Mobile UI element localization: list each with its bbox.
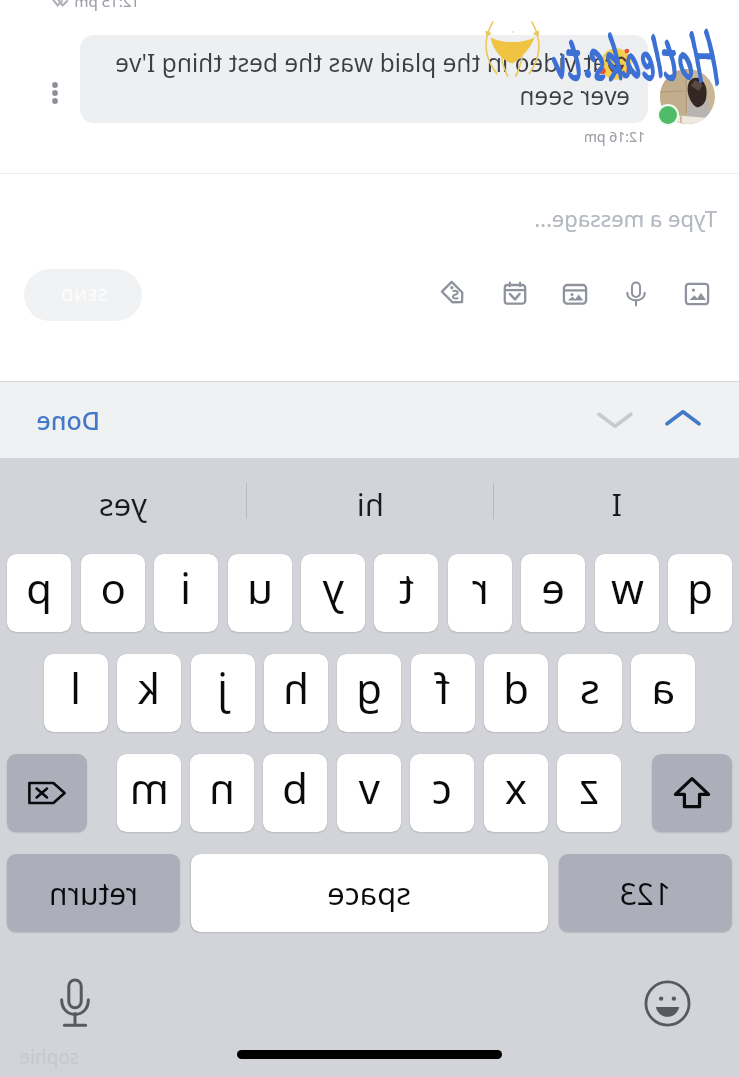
staticText: w: [610, 559, 644, 616]
staticText: 12:16 pm: [583, 127, 645, 146]
staticText: s: [579, 659, 600, 716]
staticText: m: [129, 759, 169, 816]
button[interactable]: c: [410, 754, 474, 832]
staticText: p: [26, 559, 52, 616]
button[interactable]: Schedule: [493, 272, 537, 316]
staticText: hi: [356, 483, 384, 525]
staticText: y: [322, 559, 344, 616]
button[interactable]: a: [631, 654, 695, 732]
staticText: g: [356, 659, 382, 716]
button[interactable]: 123: [559, 854, 732, 932]
button[interactable]: I: [494, 458, 739, 543]
staticText: b: [282, 759, 308, 816]
button[interactable]: m: [117, 754, 181, 832]
button[interactable]: Gallery: [553, 272, 597, 316]
button[interactable]: n: [190, 754, 254, 832]
button[interactable]: p: [7, 554, 71, 632]
button[interactable]: u: [228, 554, 292, 632]
button[interactable]: q: [668, 554, 732, 632]
button[interactable]: hi: [247, 458, 493, 543]
button[interactable]: e: [521, 554, 585, 632]
button[interactable]: v: [337, 754, 401, 832]
button[interactable]: x: [484, 754, 548, 832]
button[interactable]: g: [337, 654, 401, 732]
button[interactable]: Photo: [675, 272, 719, 316]
staticText: space: [327, 872, 411, 914]
button[interactable]: b: [263, 754, 327, 832]
button[interactable]: d: [484, 654, 548, 732]
button[interactable]: Shift: [652, 754, 732, 832]
staticText: l: [70, 659, 81, 716]
button[interactable]: Dictation: [45, 972, 105, 1032]
staticText: sophie: [19, 1044, 79, 1070]
button[interactable]: s: [558, 654, 622, 732]
staticText: Type a message...: [534, 203, 717, 233]
staticText: q: [687, 559, 713, 616]
staticText: h: [283, 659, 309, 716]
staticText: t: [398, 559, 414, 616]
staticText: c: [431, 759, 452, 816]
button[interactable]: Backspace: [7, 754, 87, 832]
button[interactable]: return: [7, 854, 180, 932]
button[interactable]: Done: [36, 393, 100, 447]
button[interactable]: f: [411, 654, 475, 732]
staticText: n: [209, 759, 235, 816]
button[interactable]: t: [374, 554, 438, 632]
button[interactable]: Previous field: [659, 395, 707, 443]
button[interactable]: h: [264, 654, 328, 732]
staticText: that video in the plaid was the best thi…: [115, 46, 630, 112]
button[interactable]: i: [154, 554, 218, 632]
staticText: x: [504, 759, 527, 816]
staticText: k: [137, 659, 160, 716]
staticText: a: [651, 659, 675, 716]
staticText: f: [435, 659, 450, 716]
button[interactable]: l: [44, 654, 108, 732]
staticText: SEND: [59, 284, 107, 306]
button[interactable]: More options: [34, 72, 76, 114]
button[interactable]: Price tag: [432, 272, 476, 316]
staticText: Done: [36, 403, 100, 437]
staticText: yes: [98, 483, 147, 525]
staticText: v: [358, 759, 380, 816]
button[interactable]: w: [595, 554, 659, 632]
staticText: i: [180, 559, 191, 616]
button[interactable]: y: [301, 554, 365, 632]
staticText: 123: [619, 873, 671, 914]
button[interactable]: o: [81, 554, 145, 632]
button[interactable]: Voice message: [614, 272, 658, 316]
staticText: z: [579, 759, 599, 816]
button[interactable]: yes: [0, 458, 246, 543]
button[interactable]: space: [191, 854, 548, 932]
button[interactable]: r: [448, 554, 512, 632]
button[interactable]: SEND: [24, 269, 142, 321]
staticText: o: [100, 559, 126, 616]
staticText: e: [541, 559, 565, 616]
staticText: d: [503, 659, 529, 716]
staticText: j: [217, 659, 228, 716]
staticText: Hotleaks.tv: [555, 13, 722, 102]
staticText: return: [48, 873, 138, 914]
staticText: r: [471, 559, 489, 616]
button[interactable]: k: [117, 654, 181, 732]
button[interactable]: j: [191, 654, 255, 732]
staticText: I: [611, 483, 622, 525]
button[interactable]: z: [557, 754, 621, 832]
button[interactable]: Next field: [591, 395, 639, 443]
staticText: u: [247, 559, 273, 616]
button[interactable]: that video in the plaid was the best thi…: [80, 35, 648, 123]
staticText: 12:15 pm: [74, 0, 140, 11]
button[interactable]: Emoji: [640, 975, 696, 1031]
